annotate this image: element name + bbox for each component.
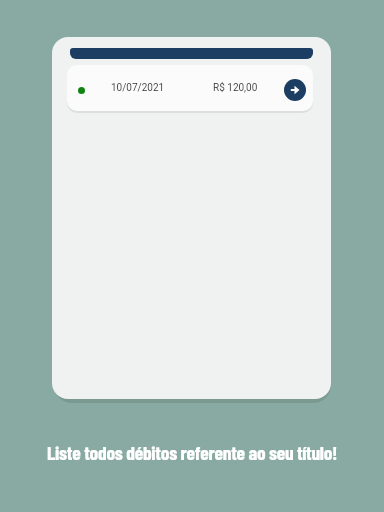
button[interactable]: 10/07/2021	[67, 65, 313, 111]
staticText: Liste todos débitos referente ao seu tít…	[47, 440, 338, 463]
staticText: R$ 120,00	[213, 82, 258, 94]
button[interactable]	[284, 79, 306, 101]
staticText: 10/07/2021	[111, 82, 165, 94]
button[interactable]: Liste todos débitos referente ao seu tít…	[0, 437, 384, 465]
